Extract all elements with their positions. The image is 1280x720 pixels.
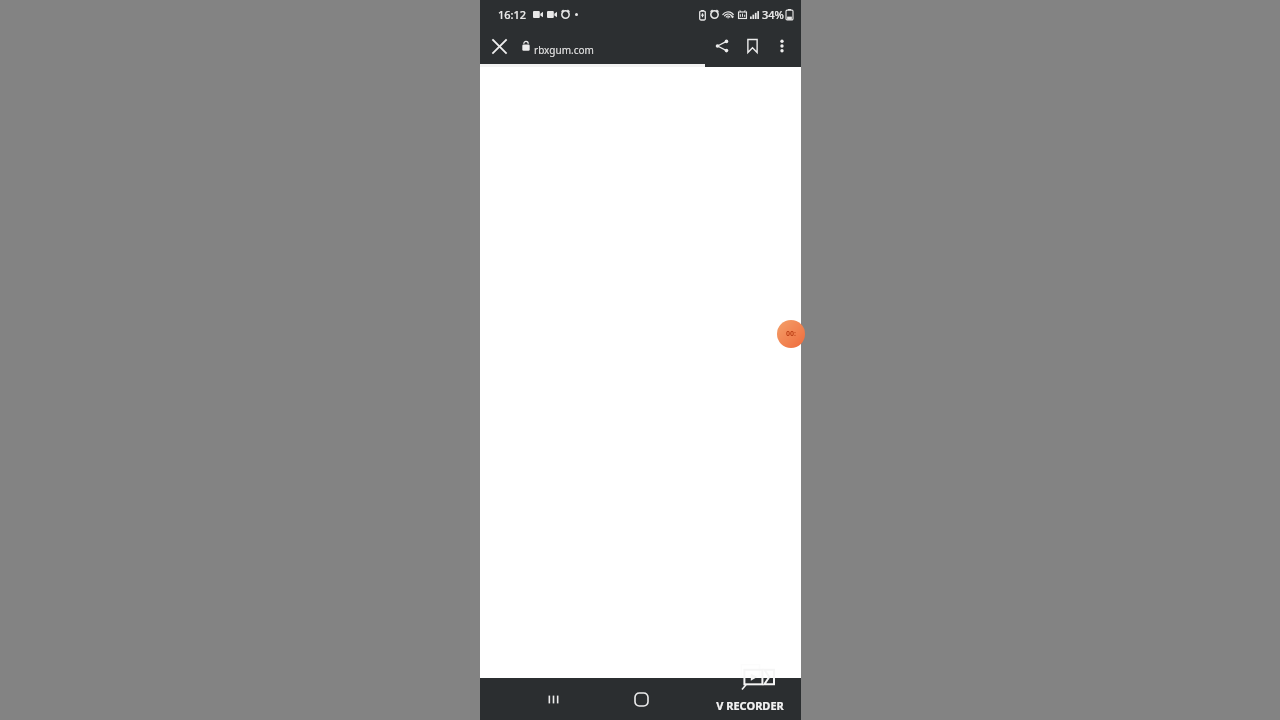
button[interactable]: Recent apps [535, 681, 571, 717]
staticText: 00: [786, 329, 796, 339]
button[interactable]: Close [487, 34, 511, 58]
button[interactable]: Bookmark [737, 31, 767, 61]
staticText: rbxgum.com [534, 43, 594, 57]
button[interactable]: Home [623, 681, 659, 717]
staticText: 16:12 [498, 7, 527, 22]
staticText: 34% [762, 7, 784, 22]
button[interactable]: Recording timer [777, 320, 805, 348]
button[interactable]: Share [707, 31, 737, 61]
button[interactable]: rbxgum.com [522, 28, 594, 64]
staticText: V RECORDER [716, 698, 784, 713]
button[interactable]: More options [767, 31, 797, 61]
